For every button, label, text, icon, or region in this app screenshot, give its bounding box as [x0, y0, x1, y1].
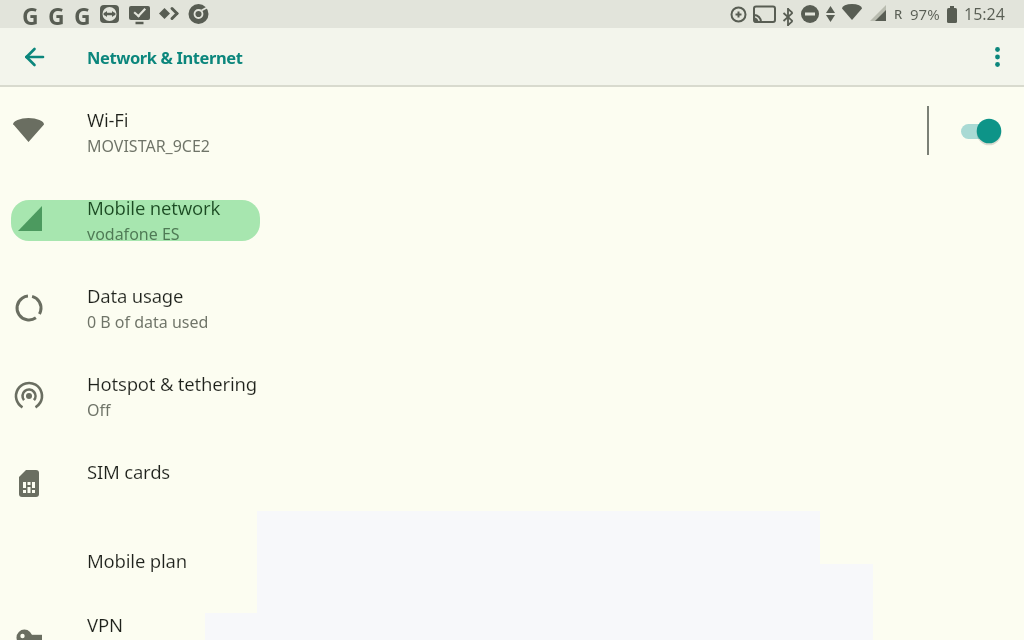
button[interactable] [957, 112, 1005, 150]
staticText: 0 B of data used [87, 311, 209, 333]
button[interactable] [14, 36, 56, 78]
staticText: G [48, 0, 65, 28]
staticText: vodafone ES [87, 223, 180, 245]
button[interactable]: Mobile plan [0, 522, 1024, 598]
staticText: R [894, 5, 903, 23]
staticText: Mobile network [87, 195, 221, 220]
staticText: Data usage [87, 283, 184, 308]
staticText: Network & Internet [87, 46, 243, 68]
staticText: G [22, 0, 39, 28]
button[interactable]: Data usage [0, 264, 1024, 352]
staticText: Hotspot & tethering [87, 371, 257, 396]
button[interactable]: Mobile network [0, 176, 1024, 264]
button[interactable]: Wi-Fi [0, 88, 1024, 176]
button[interactable]: SIM cards [0, 433, 1024, 509]
staticText: SIM cards [87, 459, 170, 484]
staticText: 97% [910, 4, 940, 24]
staticText: 15:24 [964, 3, 1005, 25]
button[interactable]: VPN [0, 586, 1024, 640]
button[interactable] [980, 40, 1014, 74]
staticText: VPN [87, 612, 123, 637]
staticText: MOVISTAR_9CE2 [87, 135, 211, 157]
staticText: G [74, 0, 91, 28]
staticText: Mobile plan [87, 548, 187, 573]
staticText: Off [87, 399, 111, 421]
staticText: Wi-Fi [87, 107, 129, 132]
button[interactable]: Hotspot & tethering [0, 352, 1024, 440]
